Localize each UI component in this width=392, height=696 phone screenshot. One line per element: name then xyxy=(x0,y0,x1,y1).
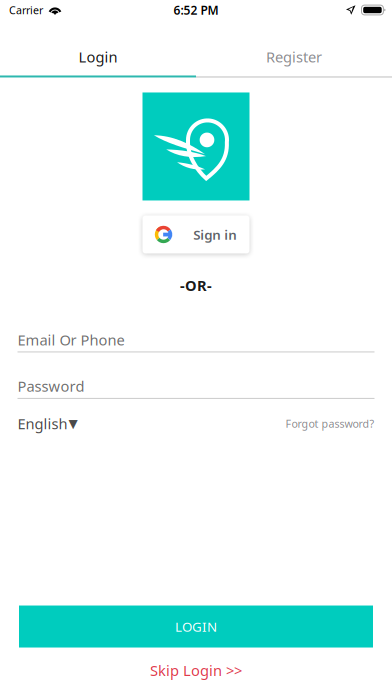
button[interactable]: Skip Login >> xyxy=(150,660,242,680)
staticText: Login xyxy=(78,47,117,66)
button[interactable]: Login xyxy=(0,47,196,77)
staticText: 6:52 PM xyxy=(173,2,218,18)
staticText: Email Or Phone xyxy=(17,330,124,349)
button[interactable]: Sign in xyxy=(142,215,249,253)
staticText: LOGIN xyxy=(175,618,217,635)
staticText: -OR- xyxy=(180,275,212,295)
staticText: Carrier xyxy=(9,3,43,17)
staticText: Skip Login >> xyxy=(150,660,242,680)
staticText: Sign in xyxy=(193,226,237,243)
staticText: English xyxy=(17,414,67,433)
staticText: Password xyxy=(17,376,84,396)
staticText: Register xyxy=(266,47,322,66)
button[interactable]: Forgot password? xyxy=(285,417,374,431)
button[interactable]: English xyxy=(17,414,77,433)
staticText: Forgot password? xyxy=(285,417,374,431)
button[interactable]: LOGIN xyxy=(19,605,373,647)
button[interactable]: Register xyxy=(196,47,392,77)
staticText: ▼ xyxy=(68,417,77,430)
